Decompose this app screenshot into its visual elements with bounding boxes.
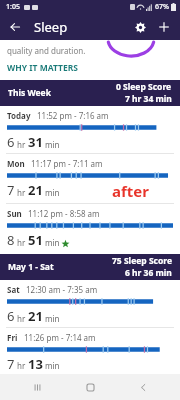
button[interactable]: Fri xyxy=(0,328,180,374)
staticText: min xyxy=(43,139,60,150)
staticText: hr xyxy=(15,139,28,150)
staticText: 51 xyxy=(28,231,43,249)
staticText: min xyxy=(43,187,60,198)
button[interactable]: Today xyxy=(0,106,180,153)
staticText: Fri xyxy=(7,332,18,343)
staticText: 11:26 pm - 7:14 am xyxy=(24,332,96,343)
button[interactable]: Home xyxy=(74,374,106,400)
button[interactable]: Back xyxy=(4,16,26,38)
staticText: 6 hr 36 min xyxy=(125,267,172,279)
button[interactable]: Settings xyxy=(128,15,152,39)
staticText: min xyxy=(43,360,60,371)
staticText: hr xyxy=(15,187,28,198)
staticText: hr xyxy=(15,237,28,248)
staticText: 7 xyxy=(7,181,15,199)
staticText: 11:17 pm - 7:11 am xyxy=(31,158,103,169)
staticText: 11:52 pm - 7:16 am xyxy=(37,110,109,121)
staticText: after xyxy=(112,181,149,201)
staticText: Sat xyxy=(7,284,20,295)
staticText: WHY IT MATTERS xyxy=(7,62,78,74)
staticText: 7 xyxy=(7,355,15,372)
staticText: 8 xyxy=(7,231,15,249)
staticText: 31 xyxy=(28,133,43,151)
staticText: Sun xyxy=(7,208,22,219)
staticText: 11:12 pm - 8:58 am xyxy=(28,208,100,219)
staticText: 21 xyxy=(28,307,43,325)
staticText: 0 Sleep Score xyxy=(116,81,172,93)
button[interactable]: Sat xyxy=(0,280,180,327)
staticText: hr xyxy=(15,313,28,324)
staticText: min xyxy=(43,237,60,248)
staticText: min xyxy=(43,313,60,324)
staticText: 21 xyxy=(28,181,43,199)
button[interactable]: May 1 - Sat xyxy=(0,254,180,280)
staticText: 75 Sleep Score xyxy=(112,255,172,267)
button[interactable]: Sun xyxy=(0,204,180,251)
staticText: May 1 - Sat xyxy=(8,261,54,273)
staticText: 13 xyxy=(28,355,43,372)
staticText: 1:05 xyxy=(6,2,20,12)
staticText: Mon xyxy=(7,158,25,169)
button[interactable]: This Week xyxy=(0,80,180,106)
staticText: 12:30 am - 7:35 am xyxy=(26,284,98,295)
button[interactable]: Add xyxy=(152,15,176,39)
staticText: 6 xyxy=(7,307,15,325)
staticText: 6 xyxy=(7,133,15,151)
staticText: 7 hr 34 min xyxy=(125,93,172,105)
button[interactable]: Back xyxy=(127,374,159,400)
staticText: This Week xyxy=(8,87,51,99)
button[interactable]: Mon xyxy=(0,154,180,203)
staticText: quality and duration. xyxy=(7,45,86,56)
button[interactable]: Recents xyxy=(21,374,53,400)
staticText: Today xyxy=(7,110,31,121)
staticText: Sleep xyxy=(34,18,68,36)
staticText: 67% xyxy=(155,2,169,12)
staticText: hr xyxy=(15,360,28,371)
